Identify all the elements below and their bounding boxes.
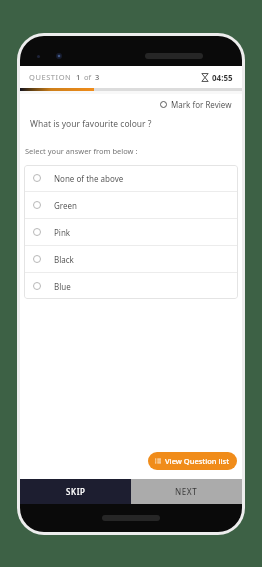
staticText: 3 bbox=[95, 72, 100, 82]
staticText: View Question list bbox=[165, 456, 230, 466]
staticText: Pink bbox=[54, 227, 71, 238]
staticText: Blue bbox=[54, 281, 71, 292]
staticText: What is your favourite colour ? bbox=[30, 118, 152, 130]
staticText: 1 bbox=[76, 72, 81, 82]
button[interactable]: Mark for Review bbox=[158, 97, 234, 112]
staticText: of bbox=[84, 72, 92, 82]
staticText: Green bbox=[54, 200, 77, 211]
button[interactable]: View Question list bbox=[148, 452, 237, 470]
staticText: 04:55 bbox=[212, 72, 233, 83]
staticText: SKIP bbox=[66, 486, 86, 497]
staticText: Select your answer from below : bbox=[25, 146, 138, 156]
button[interactable]: None of the above bbox=[24, 165, 238, 191]
staticText: Mark for Review bbox=[171, 99, 232, 110]
button[interactable]: Blue bbox=[24, 273, 238, 299]
button[interactable]: Green bbox=[24, 192, 238, 218]
staticText: None of the above bbox=[54, 173, 124, 184]
staticText: Black bbox=[54, 254, 74, 265]
button[interactable]: Black bbox=[24, 246, 238, 272]
button[interactable]: NEXT bbox=[131, 479, 242, 504]
staticText: QUESTION bbox=[29, 72, 72, 82]
button[interactable]: Pink bbox=[24, 219, 238, 245]
button[interactable]: SKIP bbox=[20, 479, 131, 504]
staticText: NEXT bbox=[175, 486, 198, 497]
